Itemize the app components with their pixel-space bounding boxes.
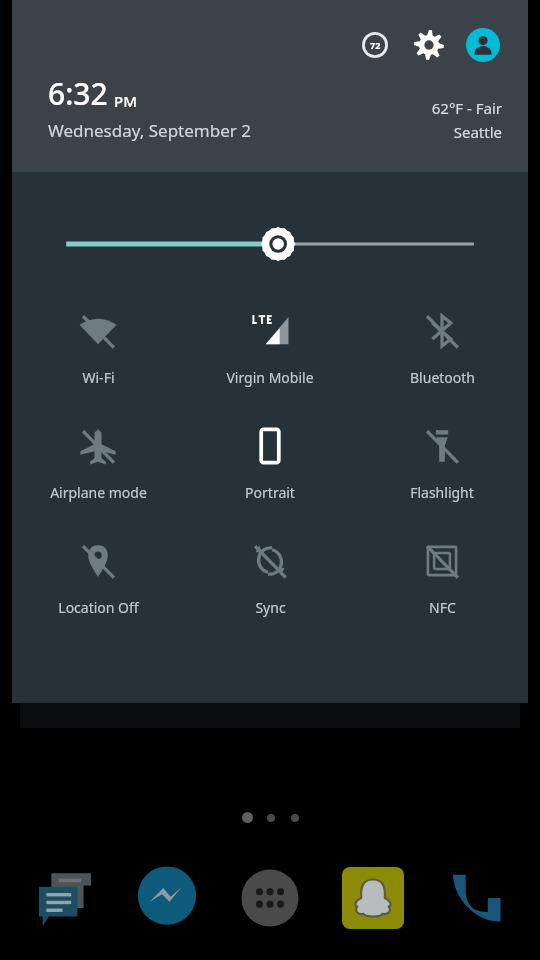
- staticText: NFC: [429, 598, 456, 617]
- button[interactable]: Messages: [27, 860, 103, 936]
- button[interactable]: 62°F - Fair: [431, 98, 502, 142]
- button[interactable]: 6:32: [48, 73, 251, 142]
- button[interactable]: Location Off: [12, 534, 184, 621]
- button[interactable]: Media control: [60, 688, 94, 722]
- button[interactable]: Flashlight: [356, 419, 528, 506]
- staticText: Seattle: [453, 122, 502, 142]
- button[interactable]: Media control: [253, 688, 287, 722]
- button[interactable]: Media control: [350, 688, 384, 722]
- button[interactable]: Virgin Mobile: [184, 304, 356, 391]
- button[interactable]: Airplane mode: [12, 419, 184, 506]
- button[interactable]: Sync: [184, 534, 356, 621]
- staticText: Airplane mode: [50, 483, 147, 502]
- button[interactable]: Bluetooth: [356, 304, 528, 391]
- staticText: Sync: [255, 598, 286, 617]
- button[interactable]: Portrait: [184, 419, 356, 506]
- button[interactable]: Media control: [446, 688, 480, 722]
- button[interactable]: All apps: [232, 860, 308, 936]
- staticText: Bluetooth: [410, 368, 475, 387]
- staticText: 72: [370, 39, 381, 51]
- button[interactable]: Battery 72 percent: [355, 25, 395, 65]
- staticText: Portrait: [245, 483, 295, 502]
- staticText: Location Off: [58, 598, 139, 617]
- button[interactable]: Settings: [409, 25, 449, 65]
- button[interactable]: Snapchat: [335, 860, 411, 936]
- staticText: PM: [114, 91, 137, 111]
- button[interactable]: User profile: [463, 25, 503, 65]
- staticText: Flashlight: [410, 483, 474, 502]
- staticText: Virgin Mobile: [226, 368, 314, 387]
- staticText: 62°F - Fair: [431, 98, 502, 118]
- button[interactable]: Phone: [437, 860, 513, 936]
- staticText: Wi-Fi: [82, 368, 115, 387]
- staticText: Wednesday, September 2: [48, 119, 251, 142]
- staticText: 6:32: [48, 73, 108, 114]
- button[interactable]: NFC: [356, 534, 528, 621]
- button[interactable]: Wi-Fi: [12, 304, 184, 391]
- button[interactable]: Media control: [157, 688, 191, 722]
- button[interactable]: Messenger: [129, 860, 205, 936]
- button[interactable]: Brightness: [12, 218, 528, 270]
